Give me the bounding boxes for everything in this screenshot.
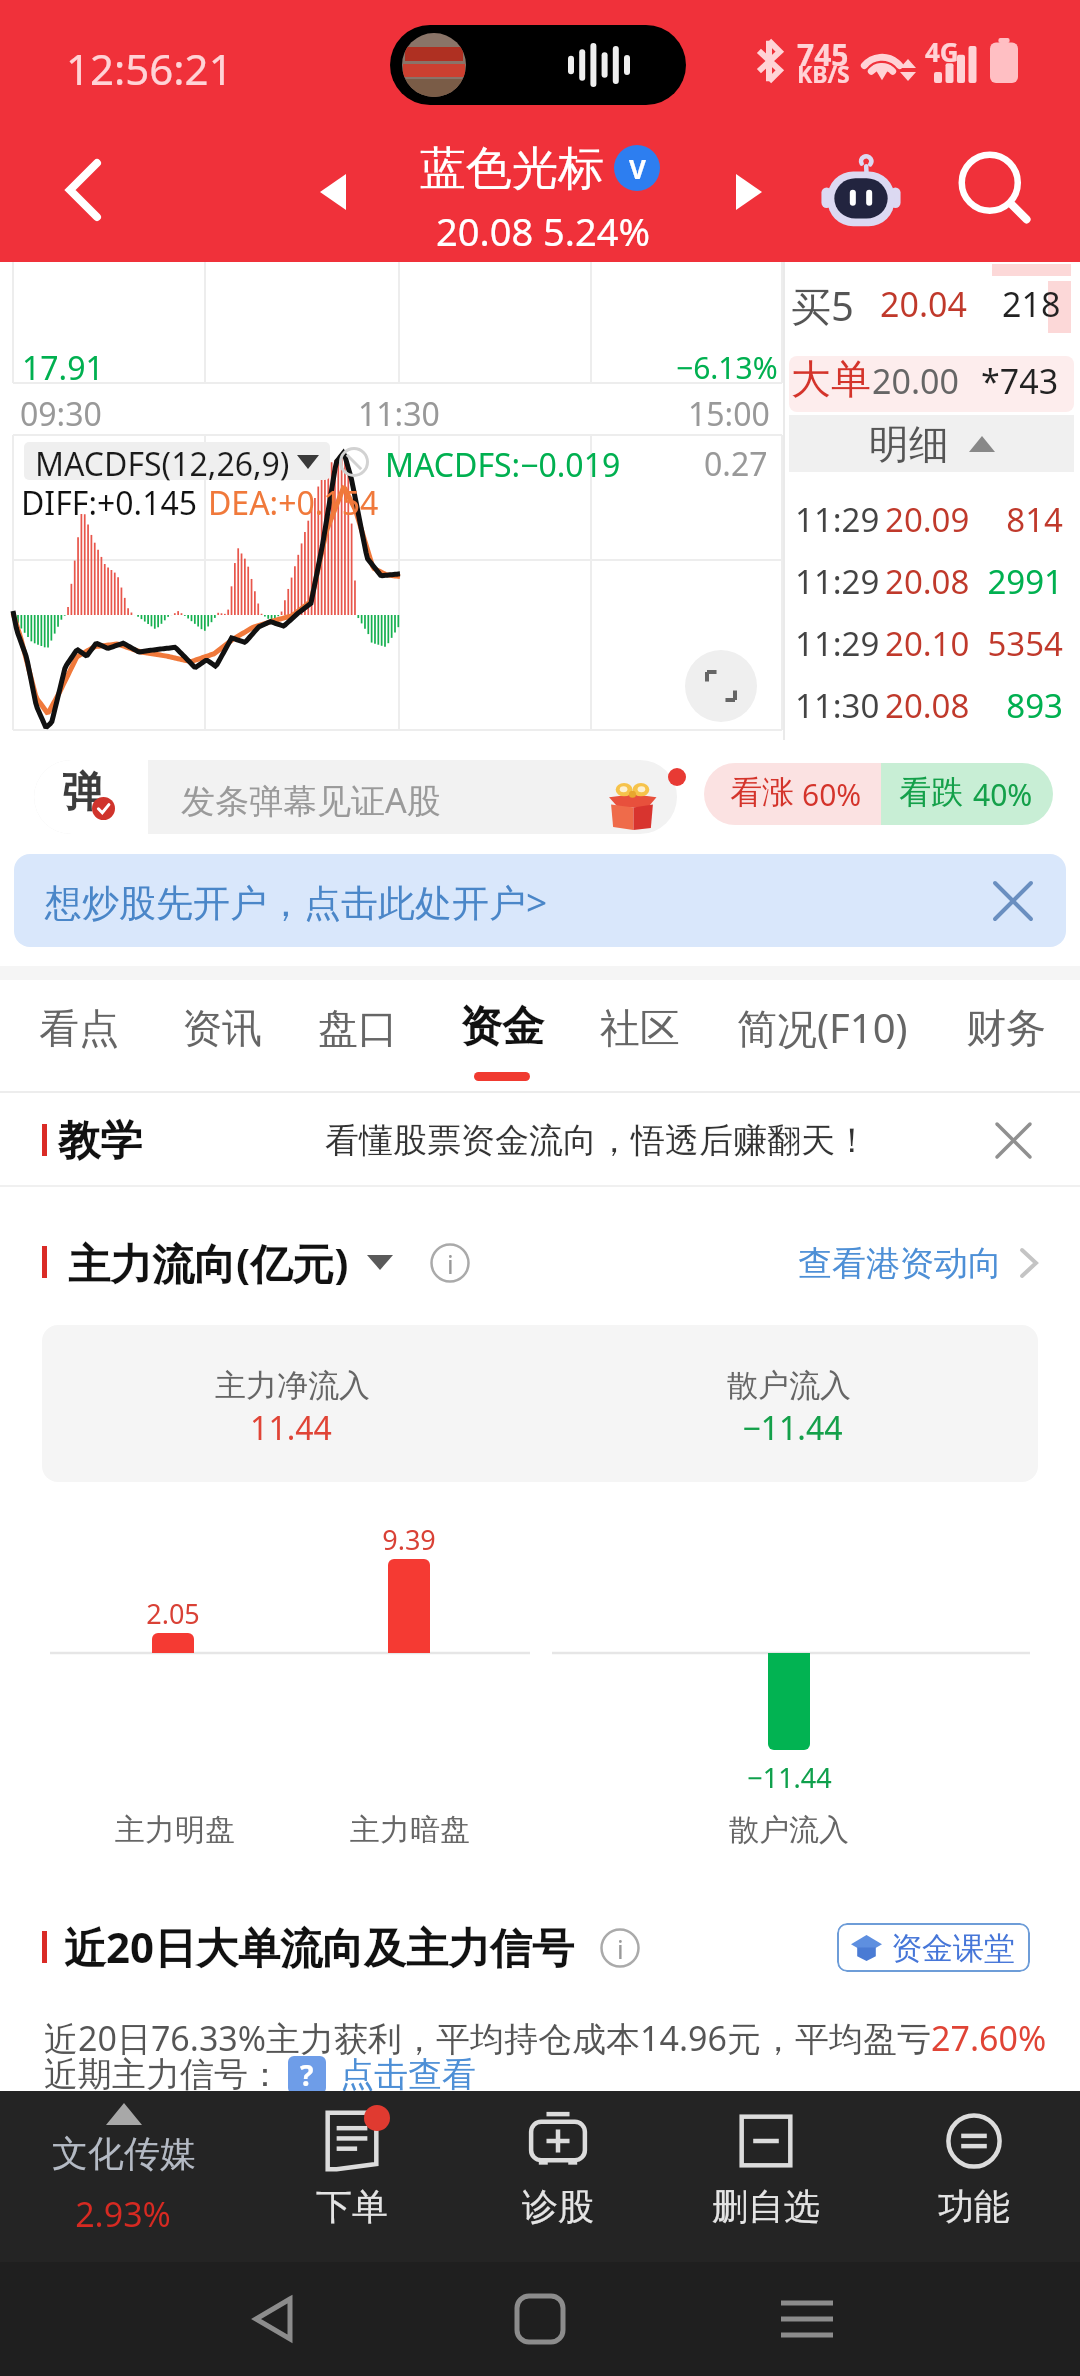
button[interactable] <box>666 2091 866 2262</box>
staticText: −11.44 <box>747 1759 832 1796</box>
staticText: DIFF:+0.145 <box>21 481 198 525</box>
button[interactable]: 关闭开户提示 <box>978 866 1048 936</box>
button[interactable]: 点击查看 <box>340 2053 476 2096</box>
staticText: 资金 <box>460 1001 544 1054</box>
button[interactable]: 想炒股先开户，点击此处开户> <box>14 854 1066 947</box>
staticText: 资金课堂 <box>891 1929 1015 1968</box>
button[interactable]: 明细 <box>789 415 1074 472</box>
staticText: KB/S <box>797 58 850 89</box>
staticText: 明细 <box>869 419 949 469</box>
staticText: 主力明盘 <box>115 1811 235 1849</box>
button[interactable]: 财务 <box>916 980 1080 1085</box>
staticText: 散户流入 <box>727 1366 851 1405</box>
staticText: 11:30 <box>795 683 880 728</box>
staticText: 看懂股票资金流向，悟透后赚翻天！ <box>325 1119 869 1162</box>
staticText: 17.91 <box>22 346 104 390</box>
staticText: 财务 <box>966 1003 1046 1053</box>
staticText: 11:29 <box>795 621 880 666</box>
button[interactable]: 资讯 <box>132 980 312 1085</box>
staticText: 主力流向(亿元) <box>68 1234 349 1291</box>
button[interactable] <box>34 760 677 834</box>
staticText: 主力净流入 <box>215 1366 370 1405</box>
staticText: 2.93% <box>75 2191 171 2237</box>
staticText: 9.39 <box>382 1521 436 1558</box>
staticText: 主力暗盘 <box>350 1811 470 1849</box>
staticText: 218 <box>1002 281 1061 327</box>
staticText: 11:29 <box>795 559 880 604</box>
staticText: 点击查看 <box>340 2053 476 2096</box>
button[interactable]: 查看港资动向 <box>798 1235 1038 1291</box>
staticText: 社区 <box>600 1003 680 1053</box>
staticText: 买5 <box>791 278 854 333</box>
staticText: 诊股 <box>522 2184 594 2229</box>
button[interactable] <box>874 2091 1074 2262</box>
staticText: 20.08 <box>885 559 970 604</box>
staticText: 文化传媒 <box>52 2131 196 2176</box>
staticText: 看点 <box>39 1003 119 1053</box>
staticText: 745 <box>797 34 849 75</box>
staticText: 0.27 <box>704 442 768 486</box>
staticText: 893 <box>930 683 1063 728</box>
button[interactable] <box>837 1923 1030 1972</box>
button[interactable]: 搜索 <box>948 144 1044 240</box>
button[interactable]: 说明 <box>598 1926 642 1970</box>
staticText: 散户流入 <box>729 1811 849 1849</box>
button[interactable]: 全屏 <box>685 650 757 722</box>
staticText: 看跌 <box>899 772 963 812</box>
button[interactable]: 上一只股票 <box>290 149 376 235</box>
button[interactable]: 下一只股票 <box>706 149 792 235</box>
staticText: 查看港资动向 <box>798 1242 1002 1285</box>
button[interactable]: 主力流向(亿元) <box>68 1231 393 1293</box>
button[interactable]: 看点 <box>0 980 169 1085</box>
staticText: 2.05 <box>146 1595 200 1632</box>
staticText: 814 <box>930 497 1063 542</box>
staticText: 盘口 <box>318 1003 398 1053</box>
button[interactable] <box>704 763 1053 825</box>
button[interactable] <box>458 2091 658 2262</box>
button[interactable] <box>0 2091 250 2262</box>
staticText: MACDFS:−0.019 <box>385 443 621 487</box>
staticText: 20.08 <box>885 683 970 728</box>
staticText: ? <box>300 2056 314 2094</box>
button[interactable]: 最近任务 <box>762 2274 852 2364</box>
button[interactable]: 返回 <box>33 140 133 240</box>
staticText: 20.04 <box>880 281 967 327</box>
staticText: 弹 <box>62 766 104 819</box>
button[interactable]: 智能助手 <box>816 150 906 234</box>
staticText: 功能 <box>938 2184 1010 2229</box>
staticText: 11.44 <box>250 1406 332 1450</box>
staticText: 12:56:21 <box>66 40 233 97</box>
staticText: 20.00 <box>872 358 959 404</box>
staticText: MACDFS(12,26,9) <box>35 442 290 486</box>
button[interactable]: 说明 <box>428 1241 472 1285</box>
staticText: 近20日76.33%主力获利，平均持仓成本14.96元，平均盈亏 <box>44 2015 931 2061</box>
staticText: 5354 <box>930 621 1063 666</box>
staticText: 想炒股先开户，点击此处开户> <box>45 876 548 927</box>
staticText: i <box>617 1931 624 1966</box>
staticText: DEA:+0.154 <box>208 481 379 525</box>
button[interactable] <box>24 442 330 480</box>
button[interactable]: 盘口 <box>268 980 448 1085</box>
staticText: 近期主力信号： <box>44 2053 282 2096</box>
button[interactable]: 主页 <box>495 2274 585 2364</box>
button[interactable]: 关闭教学 <box>980 1107 1046 1173</box>
staticText: 11:29 <box>795 497 880 542</box>
staticText: 资讯 <box>182 1003 262 1053</box>
staticText: 20.09 <box>885 497 970 542</box>
staticText: *743 <box>981 358 1059 404</box>
staticText: 2991 <box>930 559 1063 604</box>
staticText: 近20日大单流向及主力信号 <box>64 1918 575 1975</box>
button[interactable]: 资金 <box>412 980 592 1085</box>
button[interactable]: 返回 <box>228 2274 318 2364</box>
staticText: 看涨 <box>730 772 794 812</box>
staticText: 20.10 <box>885 621 970 666</box>
staticText: 60% <box>802 774 862 815</box>
button[interactable]: 简况(F10) <box>732 980 912 1085</box>
staticText: 大单 <box>791 354 871 404</box>
staticText: 删自选 <box>712 2184 820 2229</box>
staticText: 蓝色光标 <box>420 140 604 198</box>
staticText: V <box>629 151 646 186</box>
button[interactable]: 社区 <box>550 980 730 1085</box>
button[interactable] <box>252 2091 452 2262</box>
staticText: 发条弹幕见证A股 <box>181 777 441 823</box>
